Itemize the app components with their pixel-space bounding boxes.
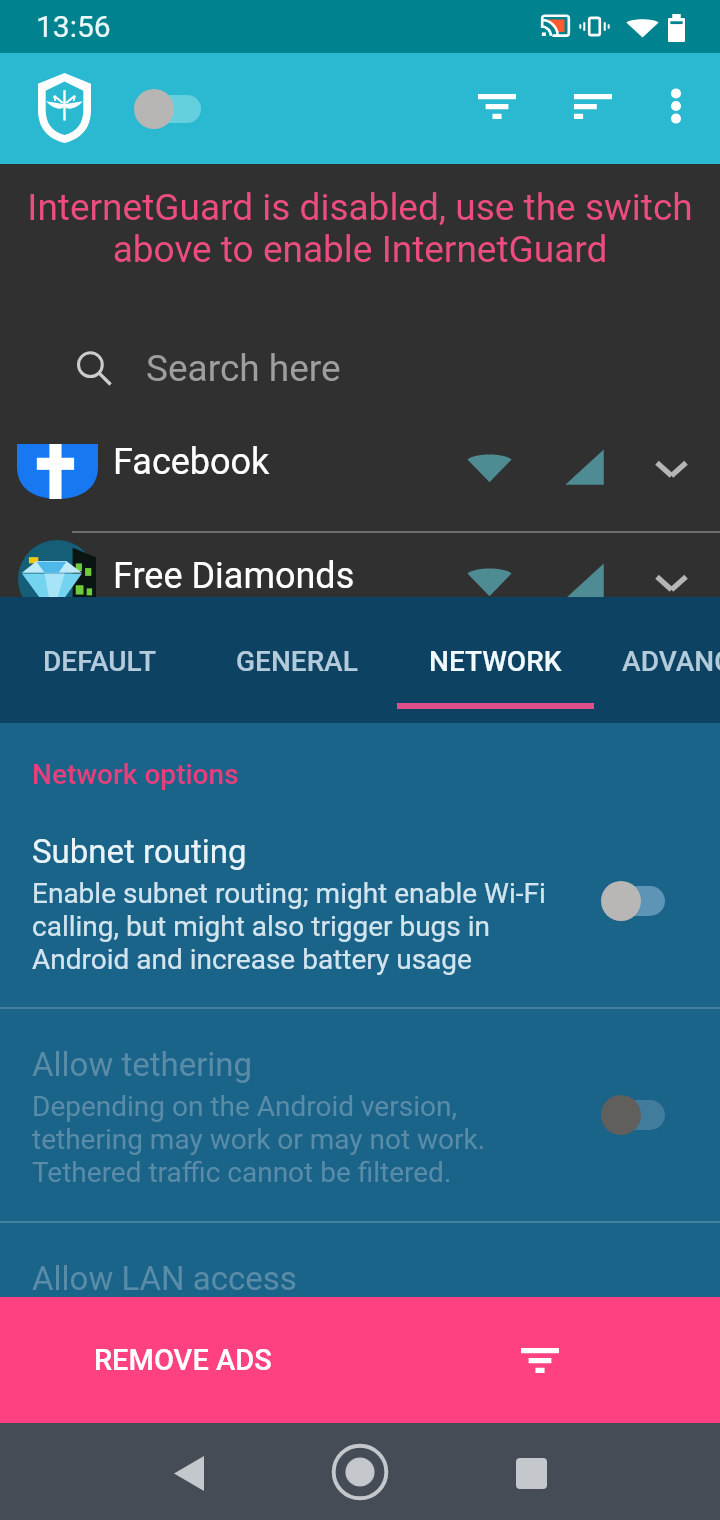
- staticText: DEFAULT: [43, 645, 156, 678]
- button[interactable]: Allow tethering: [581, 1073, 695, 1157]
- staticText: InternetGuard is disabled, use the switc…: [0, 186, 720, 271]
- staticText: 13:56: [36, 9, 111, 44]
- staticText: GENERAL: [236, 645, 358, 678]
- button[interactable]: Subnet routing: [32, 832, 602, 976]
- staticText: Depending on the Android version, tether…: [32, 1090, 486, 1189]
- button[interactable]: Filter: [500, 1320, 580, 1400]
- button[interactable]: Facebook: [0, 406, 720, 518]
- button[interactable]: Recents: [491, 1433, 571, 1513]
- button[interactable]: Subnet routing: [581, 859, 695, 943]
- staticText: Allow tethering: [32, 1045, 253, 1084]
- staticText: Network options: [32, 758, 239, 791]
- staticText: Subnet routing: [32, 832, 247, 871]
- staticText: Facebook: [113, 441, 270, 483]
- button[interactable]: ADVANCED: [594, 597, 720, 723]
- button[interactable]: NETWORK: [396, 597, 594, 723]
- button[interactable]: InternetGuard: [28, 63, 100, 153]
- button[interactable]: More options: [634, 64, 718, 148]
- button[interactable]: Allow tethering: [32, 1045, 602, 1189]
- staticText: Free Diamonds: [113, 555, 355, 597]
- button[interactable]: Sort: [551, 64, 635, 148]
- staticText: NETWORK: [429, 645, 562, 678]
- staticText: ADVANCED: [622, 645, 720, 678]
- staticText: REMOVE ADS: [94, 1343, 272, 1377]
- staticText: Search here: [146, 347, 341, 390]
- staticText: Enable subnet routing; might enable Wi-F…: [32, 877, 546, 976]
- button[interactable]: Enable InternetGuard: [116, 75, 224, 143]
- button[interactable]: Back: [149, 1433, 229, 1513]
- button[interactable]: Filter: [455, 64, 539, 148]
- button[interactable]: Home: [320, 1432, 400, 1512]
- button[interactable]: GENERAL: [198, 597, 396, 723]
- button[interactable]: DEFAULT: [0, 597, 198, 723]
- button[interactable]: Search here: [0, 319, 720, 406]
- button[interactable]: Free Diamonds: [0, 520, 720, 632]
- staticText: Allow LAN access: [32, 1259, 297, 1298]
